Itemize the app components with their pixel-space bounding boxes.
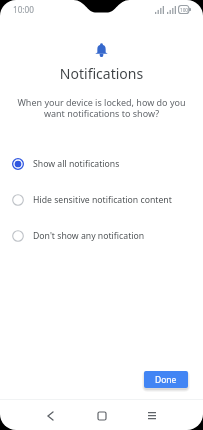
staticText: Notifications	[0, 64, 203, 83]
button[interactable]: Recents	[138, 400, 166, 430]
staticText: Don't show any notification	[33, 230, 145, 242]
staticText: Done	[155, 374, 177, 386]
staticText: Show all notifications	[33, 158, 120, 170]
button[interactable]: Done	[144, 371, 188, 388]
button[interactable]: Hide sensitive notification content	[0, 182, 203, 218]
staticText: 10:00	[13, 4, 34, 15]
staticText: Hide sensitive notification content	[33, 194, 172, 206]
button[interactable]: Don't show any notification	[0, 218, 203, 254]
button[interactable]: Back	[36, 400, 64, 430]
button[interactable]: Show all notifications	[0, 146, 203, 182]
staticText: When your device is locked, how do you w…	[13, 96, 190, 120]
staticText: 100	[180, 7, 189, 13]
button[interactable]: Home	[88, 400, 116, 430]
